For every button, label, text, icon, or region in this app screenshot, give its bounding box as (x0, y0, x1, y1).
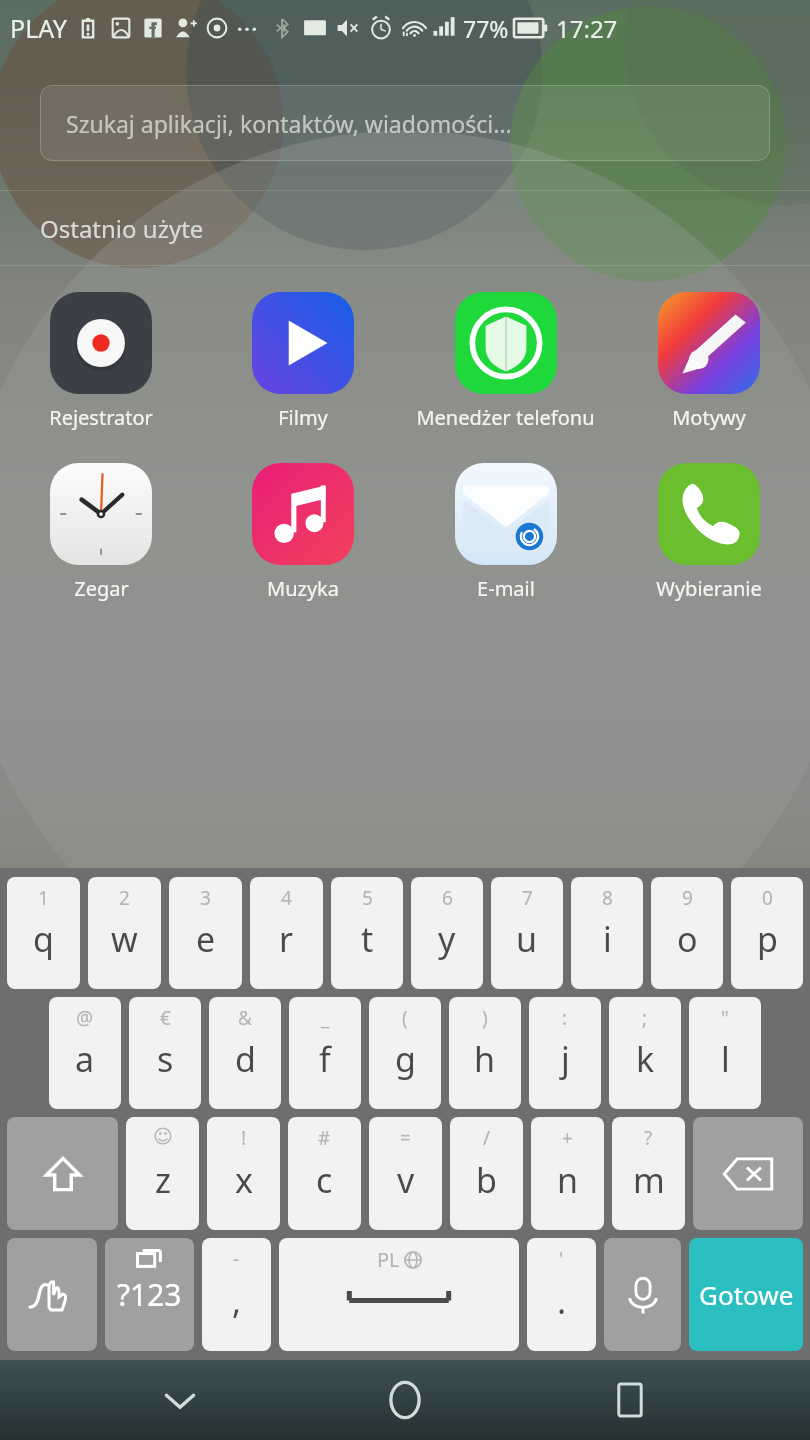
staticText: Filmy (278, 404, 328, 431)
staticText: v (397, 1157, 415, 1203)
staticText: Wybieranie (656, 575, 762, 602)
button[interactable]: / (450, 1117, 523, 1230)
staticText: d (235, 1036, 256, 1082)
button[interactable]: ☺ (126, 1117, 199, 1230)
staticText: Gotowe (699, 1277, 794, 1312)
staticText: h (474, 1036, 496, 1082)
staticText: o (677, 916, 698, 962)
button[interactable]: Handwriting (7, 1238, 97, 1351)
staticText: 7 (522, 885, 533, 911)
staticText: 4 (281, 885, 292, 911)
staticText: q (33, 916, 54, 962)
staticText: a (75, 1036, 95, 1082)
staticText: € (160, 1005, 171, 1031)
staticText: 17:27 (556, 12, 618, 45)
staticText: ' (559, 1246, 564, 1272)
staticText: l (721, 1036, 730, 1082)
staticText: ? (644, 1125, 653, 1151)
staticText: ) (482, 1005, 488, 1031)
button[interactable]: 4 (250, 877, 323, 989)
staticText: . (557, 1278, 567, 1324)
staticText: , (232, 1278, 242, 1324)
button[interactable]: = (369, 1117, 442, 1230)
button[interactable]: ; (609, 997, 681, 1109)
staticText: f (319, 1036, 331, 1082)
staticText: Menedżer telefonu (416, 404, 595, 431)
button[interactable]: ? (612, 1117, 685, 1230)
button[interactable]: + (531, 1117, 604, 1230)
button[interactable]: ) (449, 997, 521, 1109)
button[interactable]: Szukaj aplikacji, kontaktów, wiadomości.… (40, 85, 770, 161)
staticText: 77% (463, 13, 509, 44)
staticText: 8 (602, 885, 613, 911)
staticText: 2 (119, 885, 130, 911)
staticText: - (233, 1246, 240, 1272)
staticText: 3 (200, 885, 211, 911)
button[interactable]: Voice input (604, 1238, 681, 1351)
button[interactable]: ! (207, 1117, 280, 1230)
button[interactable]: 0 (731, 877, 803, 989)
button[interactable]: 5 (331, 877, 403, 989)
button[interactable]: E-mail (404, 459, 607, 606)
button[interactable]: : (529, 997, 601, 1109)
button[interactable]: Shift (7, 1117, 118, 1230)
staticText: s (157, 1036, 174, 1082)
button[interactable]: # (288, 1117, 361, 1230)
staticText: Szukaj aplikacji, kontaktów, wiadomości.… (66, 108, 512, 139)
button[interactable]: 7 (491, 877, 563, 989)
button[interactable]: € (129, 997, 201, 1109)
staticText: x (235, 1157, 253, 1203)
button[interactable]: @ (49, 997, 121, 1109)
button[interactable]: 1 (7, 877, 80, 989)
staticText: e (196, 916, 216, 962)
staticText: ?123 (117, 1274, 182, 1315)
button[interactable]: 3 (169, 877, 242, 989)
button[interactable]: 6 (411, 877, 483, 989)
button[interactable]: Recents (585, 1360, 675, 1440)
staticText: " (721, 1005, 729, 1031)
staticText: = (400, 1125, 411, 1151)
button[interactable]: _ (289, 997, 361, 1109)
staticText: t (361, 916, 374, 962)
button[interactable]: Motywy (607, 288, 810, 435)
staticText: @ (76, 1005, 94, 1031)
staticText: 6 (442, 885, 453, 911)
staticText: _ (321, 1005, 330, 1031)
staticText: 0 (762, 885, 773, 911)
button[interactable]: " (689, 997, 761, 1109)
staticText: g (395, 1036, 416, 1082)
button[interactable]: 8 (571, 877, 643, 989)
staticText: E-mail (477, 575, 535, 602)
staticText: w (111, 916, 138, 962)
staticText: i (603, 916, 612, 962)
staticText: & (238, 1005, 252, 1031)
button[interactable]: ?123 (105, 1238, 194, 1351)
button[interactable]: Filmy (202, 288, 404, 435)
staticText: ( (402, 1005, 408, 1031)
button[interactable]: ( (369, 997, 441, 1109)
staticText: # (318, 1125, 331, 1151)
button[interactable]: ' (527, 1238, 596, 1351)
button[interactable]: Backspace (693, 1117, 803, 1230)
button[interactable]: Hide keyboard (135, 1360, 225, 1440)
button[interactable]: & (209, 997, 281, 1109)
button[interactable]: Home (360, 1360, 450, 1440)
staticText: b (476, 1157, 497, 1203)
button[interactable]: Menedżer telefonu (404, 288, 607, 435)
button[interactable]: Zegar (0, 459, 202, 606)
staticText: p (757, 916, 778, 962)
button[interactable]: Wybieranie (607, 459, 810, 606)
button[interactable]: Space (279, 1238, 519, 1351)
staticText: c (316, 1157, 333, 1203)
button[interactable]: 2 (88, 877, 161, 989)
staticText: ☺ (153, 1125, 173, 1147)
staticText: / (483, 1125, 491, 1151)
button[interactable]: Gotowe (689, 1238, 803, 1351)
button[interactable]: Rejestrator (0, 288, 202, 435)
button[interactable]: 9 (651, 877, 723, 989)
staticText: y (438, 916, 456, 962)
staticText: PLAY (10, 11, 67, 45)
button[interactable]: - (202, 1238, 271, 1351)
button[interactable]: Muzyka (202, 459, 404, 606)
staticText: n (557, 1157, 579, 1203)
